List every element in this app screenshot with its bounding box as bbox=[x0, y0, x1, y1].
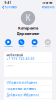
button[interactable]: Аудио bbox=[15, 39, 28, 48]
staticText: почта bbox=[45, 46, 50, 47]
staticText: Дерматолог bbox=[16, 31, 39, 36]
button[interactable]: Добавить в Избранное bbox=[4, 92, 52, 98]
button[interactable]: Видео bbox=[28, 39, 41, 48]
staticText: Изменить bbox=[42, 5, 54, 9]
button[interactable]: мобильный bbox=[4, 52, 52, 63]
staticText: видео bbox=[32, 46, 37, 47]
staticText: мобильный bbox=[6, 54, 23, 57]
staticText: К bbox=[25, 13, 30, 23]
staticText: Поделиться контактом bbox=[6, 87, 36, 91]
button[interactable]: Контакты bbox=[2, 5, 17, 10]
button[interactable]: Изменить bbox=[42, 5, 54, 10]
staticText: Отправить сообщение bbox=[6, 81, 36, 84]
button[interactable]: Почта bbox=[42, 39, 54, 48]
staticText: Катаракта bbox=[18, 25, 38, 31]
staticText: Добавить в Избранное bbox=[6, 93, 38, 97]
staticText: +7 916 720-40-30 bbox=[6, 57, 34, 61]
staticText: заметки bbox=[6, 65, 13, 67]
button[interactable]: Поделиться геопозицией bbox=[4, 98, 52, 100]
button[interactable]: Отправить сообщение bbox=[4, 80, 52, 86]
button[interactable]: Поделиться контактом bbox=[4, 86, 52, 92]
button[interactable]: Сообщение bbox=[2, 39, 14, 48]
staticText: сообщение bbox=[4, 46, 13, 47]
staticText: 9:41 bbox=[4, 1, 11, 5]
staticText: аудио bbox=[19, 46, 24, 47]
staticText: Контакты bbox=[5, 5, 17, 9]
